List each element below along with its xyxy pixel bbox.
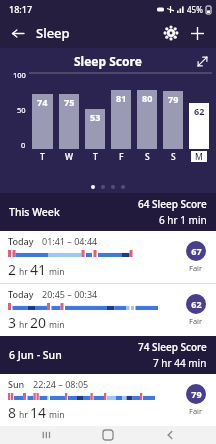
staticText: F: [119, 151, 124, 162]
staticText: M: [195, 151, 203, 162]
staticText: 8: [8, 403, 17, 422]
staticText: 41: [30, 260, 47, 279]
staticText: 100: [13, 70, 26, 80]
staticText: T: [40, 151, 45, 162]
staticText: 74: [37, 96, 48, 108]
staticText: Sleep: [36, 24, 70, 42]
button[interactable]: 75: [56, 70, 82, 162]
staticText: 3: [8, 313, 17, 332]
button[interactable]: Settings: [158, 20, 184, 46]
button[interactable]: 80: [134, 70, 160, 162]
staticText: min: [49, 409, 65, 421]
button[interactable]: Sun: [0, 374, 216, 426]
staticText: 79: [168, 93, 179, 105]
button[interactable]: Back: [155, 426, 185, 444]
button[interactable]: Home: [93, 426, 123, 444]
staticText: 14: [30, 403, 47, 422]
button[interactable]: This Week: [0, 193, 216, 231]
staticText: 18:17: [9, 3, 33, 15]
staticText: 80: [142, 92, 153, 104]
button[interactable]: Add: [184, 20, 210, 46]
staticText: Fair: [189, 406, 203, 416]
button[interactable]: 6 Jun - Sun: [0, 336, 216, 374]
staticText: 20: [30, 313, 47, 332]
staticText: hr: [19, 319, 28, 331]
staticText: 79: [191, 388, 202, 400]
staticText: Sun: [8, 378, 25, 390]
staticText: 62: [194, 105, 205, 117]
staticText: 01:41 – 04:44: [42, 235, 98, 247]
staticText: Sleep Score: [74, 53, 142, 69]
button[interactable]: 53: [82, 70, 108, 162]
staticText: Fair: [189, 316, 203, 326]
staticText: hr: [19, 409, 28, 421]
staticText: 50: [17, 105, 26, 115]
button[interactable]: Today: [0, 284, 216, 336]
staticText: 45%: [187, 4, 203, 15]
button[interactable]: Recents: [32, 426, 62, 444]
staticText: Today: [8, 288, 34, 300]
button[interactable]: 79: [160, 70, 186, 162]
staticText: 53: [90, 111, 101, 123]
staticText: This Week: [9, 205, 60, 219]
staticText: 67: [191, 245, 202, 257]
staticText: 20:45 – 00:34: [42, 288, 98, 300]
staticText: 22:24 – 08:05: [33, 378, 89, 390]
staticText: min: [49, 266, 65, 278]
staticText: Fair: [189, 263, 203, 273]
button[interactable]: 81: [108, 70, 134, 162]
staticText: W: [65, 151, 73, 162]
staticText: T: [93, 151, 98, 162]
staticText: 0: [21, 140, 26, 150]
staticText: S: [145, 151, 150, 162]
staticText: 64 Sleep Score: [138, 197, 207, 211]
button[interactable]: Expand: [191, 50, 213, 72]
staticText: 75: [64, 96, 75, 108]
staticText: 6 Jun - Sun: [9, 348, 62, 362]
staticText: 62: [191, 298, 202, 310]
staticText: Today: [8, 235, 34, 247]
staticText: 6 hr 1 min: [159, 213, 207, 227]
staticText: 2: [8, 260, 17, 279]
staticText: 74 Sleep Score: [138, 340, 207, 354]
button[interactable]: Back: [4, 20, 30, 46]
button[interactable]: 74: [29, 70, 56, 162]
staticText: S: [171, 151, 176, 162]
staticText: 7 hr 44 min: [153, 356, 207, 370]
staticText: hr: [19, 266, 28, 278]
button[interactable]: 62: [186, 70, 212, 162]
button[interactable]: Today: [0, 231, 216, 283]
staticText: min: [49, 319, 65, 331]
staticText: 81: [116, 92, 127, 104]
